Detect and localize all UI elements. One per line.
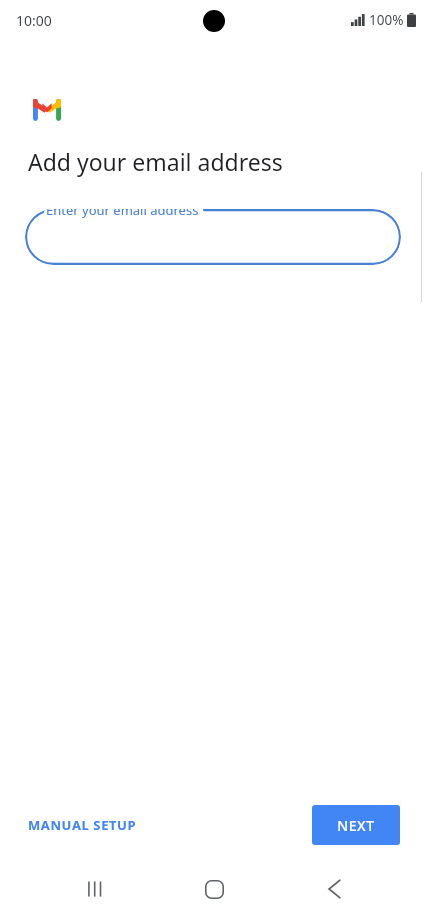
button[interactable]: Enter your email address <box>25 209 401 265</box>
staticText: NEXT <box>337 816 375 835</box>
staticText: Add your email address <box>28 146 283 177</box>
staticText: 100% <box>369 11 404 29</box>
button[interactable]: NEXT <box>312 805 400 845</box>
button[interactable]: Home <box>192 867 236 911</box>
button[interactable]: MANUAL SETUP <box>16 806 149 844</box>
button[interactable]: Back <box>312 867 356 911</box>
staticText: MANUAL SETUP <box>28 816 137 834</box>
staticText: Enter your email address <box>46 209 199 219</box>
button[interactable]: Recent apps <box>73 867 117 911</box>
staticText: 10:00 <box>16 11 52 30</box>
